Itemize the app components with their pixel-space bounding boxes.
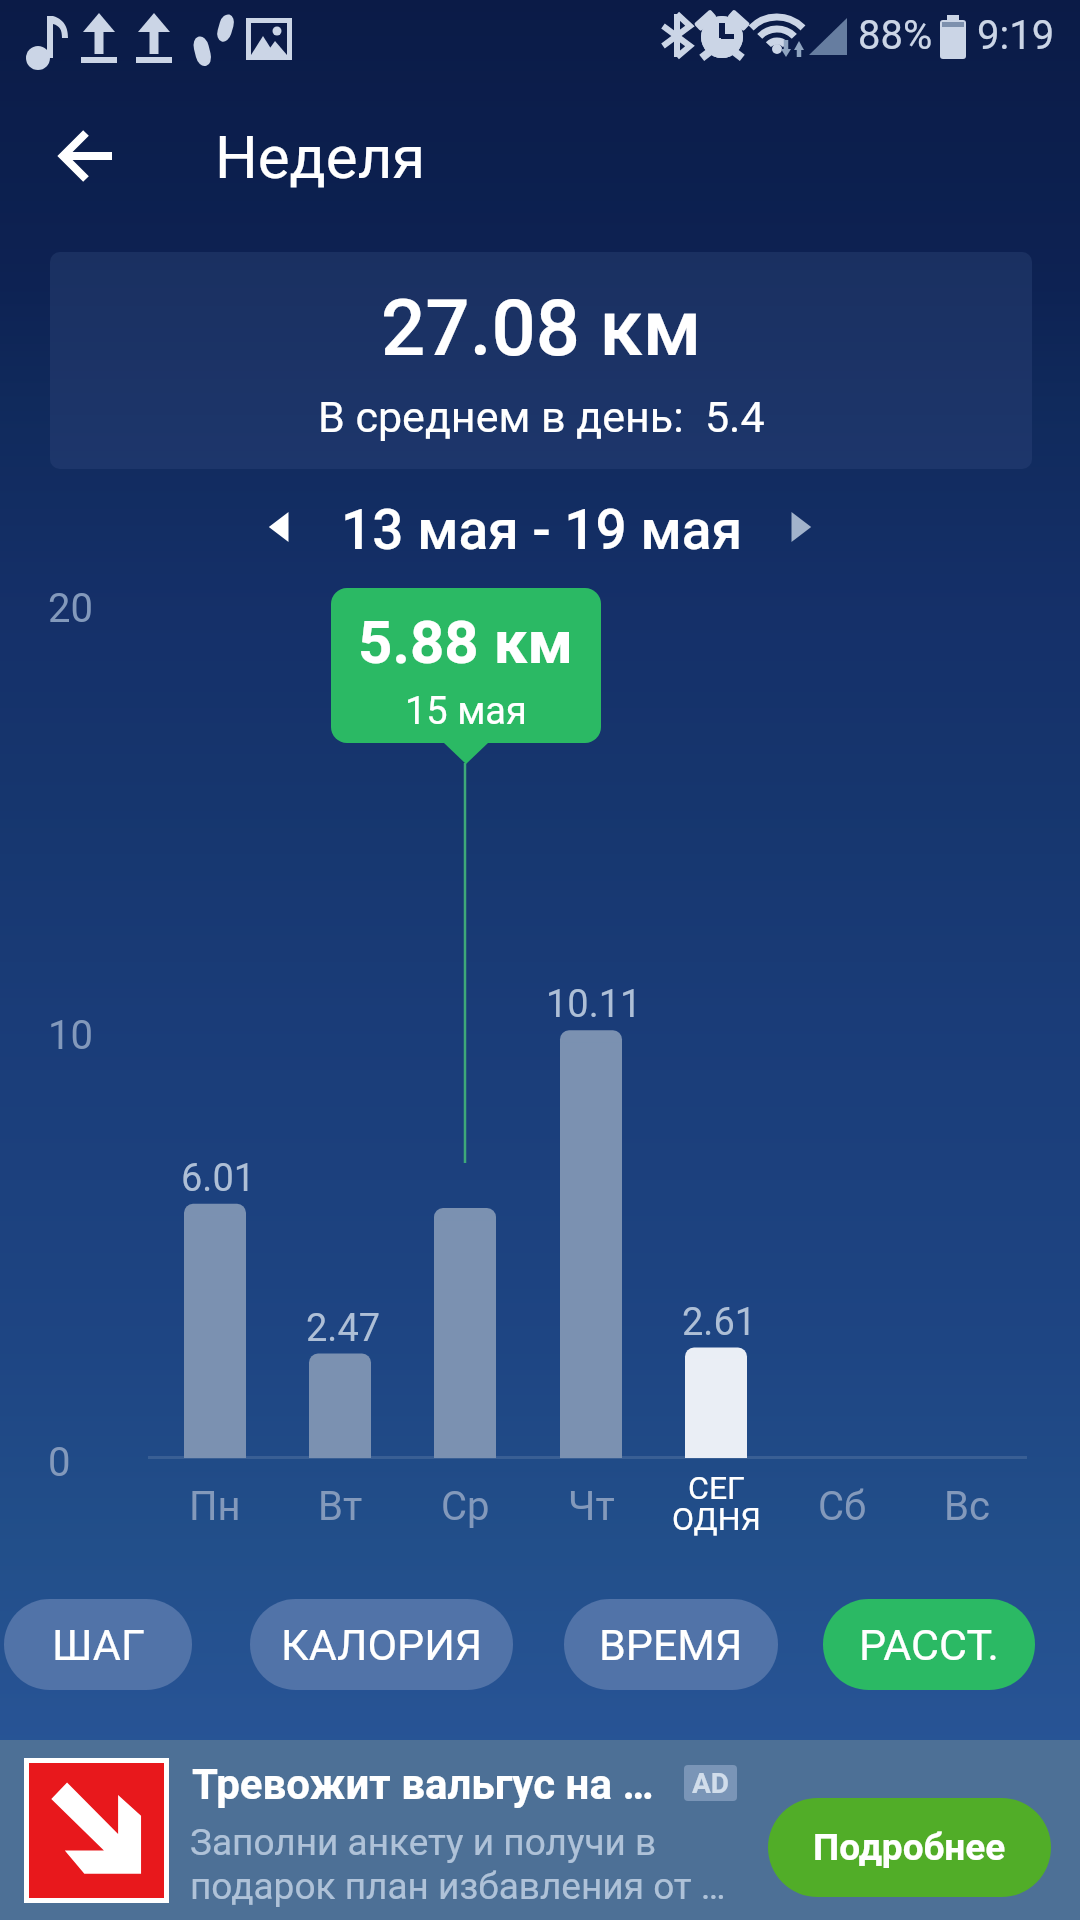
button[interactable]: Тревожит вальгус на … [0,1740,1080,1920]
staticText: 9:19 [977,12,1055,59]
staticText: Тревожит вальгус на … [192,1760,654,1809]
button[interactable]: Вс [904,1170,1030,1530]
staticText: Чт [568,1483,615,1530]
staticText: 88% [858,12,933,59]
staticText: Сб [818,1483,867,1530]
staticText: AD [692,1767,730,1800]
staticText: 20 [48,585,93,632]
staticText: 15 мая [405,689,527,734]
staticText: КАЛОРИЯ [281,1620,483,1670]
staticText: 13 мая - 19 мая [341,498,743,562]
button[interactable]: ШАГ [4,1599,192,1690]
staticText: Подробнее [813,1826,1006,1869]
button[interactable]: Previous week [243,491,315,563]
staticText: ВРЕМЯ [599,1620,743,1670]
staticText: Вт [318,1483,363,1530]
staticText: 27.08 км [381,283,702,374]
button[interactable]: Back [36,108,132,204]
button[interactable]: 27.08 км [50,252,1032,469]
button[interactable]: ВРЕМЯ [564,1599,778,1690]
staticText: Заполни анкету и получи в подарок план и… [190,1821,726,1908]
staticText: Пн [189,1483,241,1530]
staticText: ШАГ [52,1620,145,1670]
button[interactable]: Сб [779,1170,905,1530]
staticText: 2.47 [306,1306,381,1351]
button[interactable]: Подробнее [768,1798,1051,1897]
button[interactable]: СЕГ ОДНЯ [653,1170,779,1540]
staticText: 10.11 [546,982,642,1027]
staticText: РАССТ. [859,1620,999,1670]
staticText: СЕГ ОДНЯ [672,1469,761,1538]
staticText: Ср [441,1483,490,1530]
button[interactable]: РАССТ. [823,1599,1035,1690]
button[interactable]: 5.88 км [331,588,601,743]
staticText: 10 [48,1012,93,1059]
button[interactable]: Чт [528,1170,654,1530]
staticText: 6.01 [181,1156,256,1201]
button[interactable]: Вт [277,1170,403,1530]
staticText: В среднем в день: 5.4 [318,392,765,442]
button[interactable]: Пн [152,1170,278,1530]
staticText: 2.61 [682,1300,757,1345]
staticText: 5.88 км [358,607,574,677]
staticText: Вс [944,1483,990,1530]
button[interactable]: КАЛОРИЯ [250,1599,513,1690]
staticText: 0 [48,1439,71,1486]
button[interactable]: Ср [402,1170,528,1530]
button[interactable]: Next week [765,491,837,563]
staticText: Неделя [215,122,426,192]
